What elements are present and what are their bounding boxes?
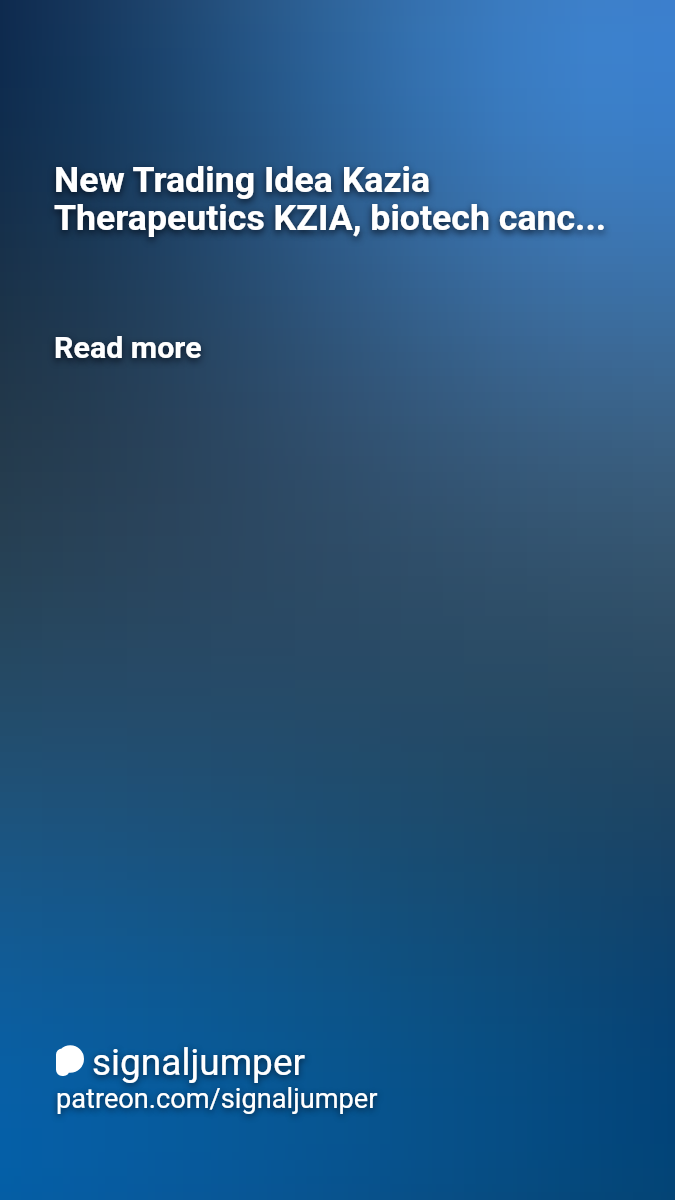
button[interactable]: Patreon xyxy=(56,1041,378,1116)
staticText: Read more xyxy=(54,330,202,366)
other: Patreon xyxy=(56,1045,84,1076)
staticText: patreon.com/signaljumper xyxy=(56,1083,378,1115)
button[interactable]: Read more xyxy=(54,330,202,366)
staticText: New Trading Idea Kazia Therapeutics KZIA… xyxy=(54,159,607,239)
staticText: signaljumper xyxy=(92,1041,306,1084)
